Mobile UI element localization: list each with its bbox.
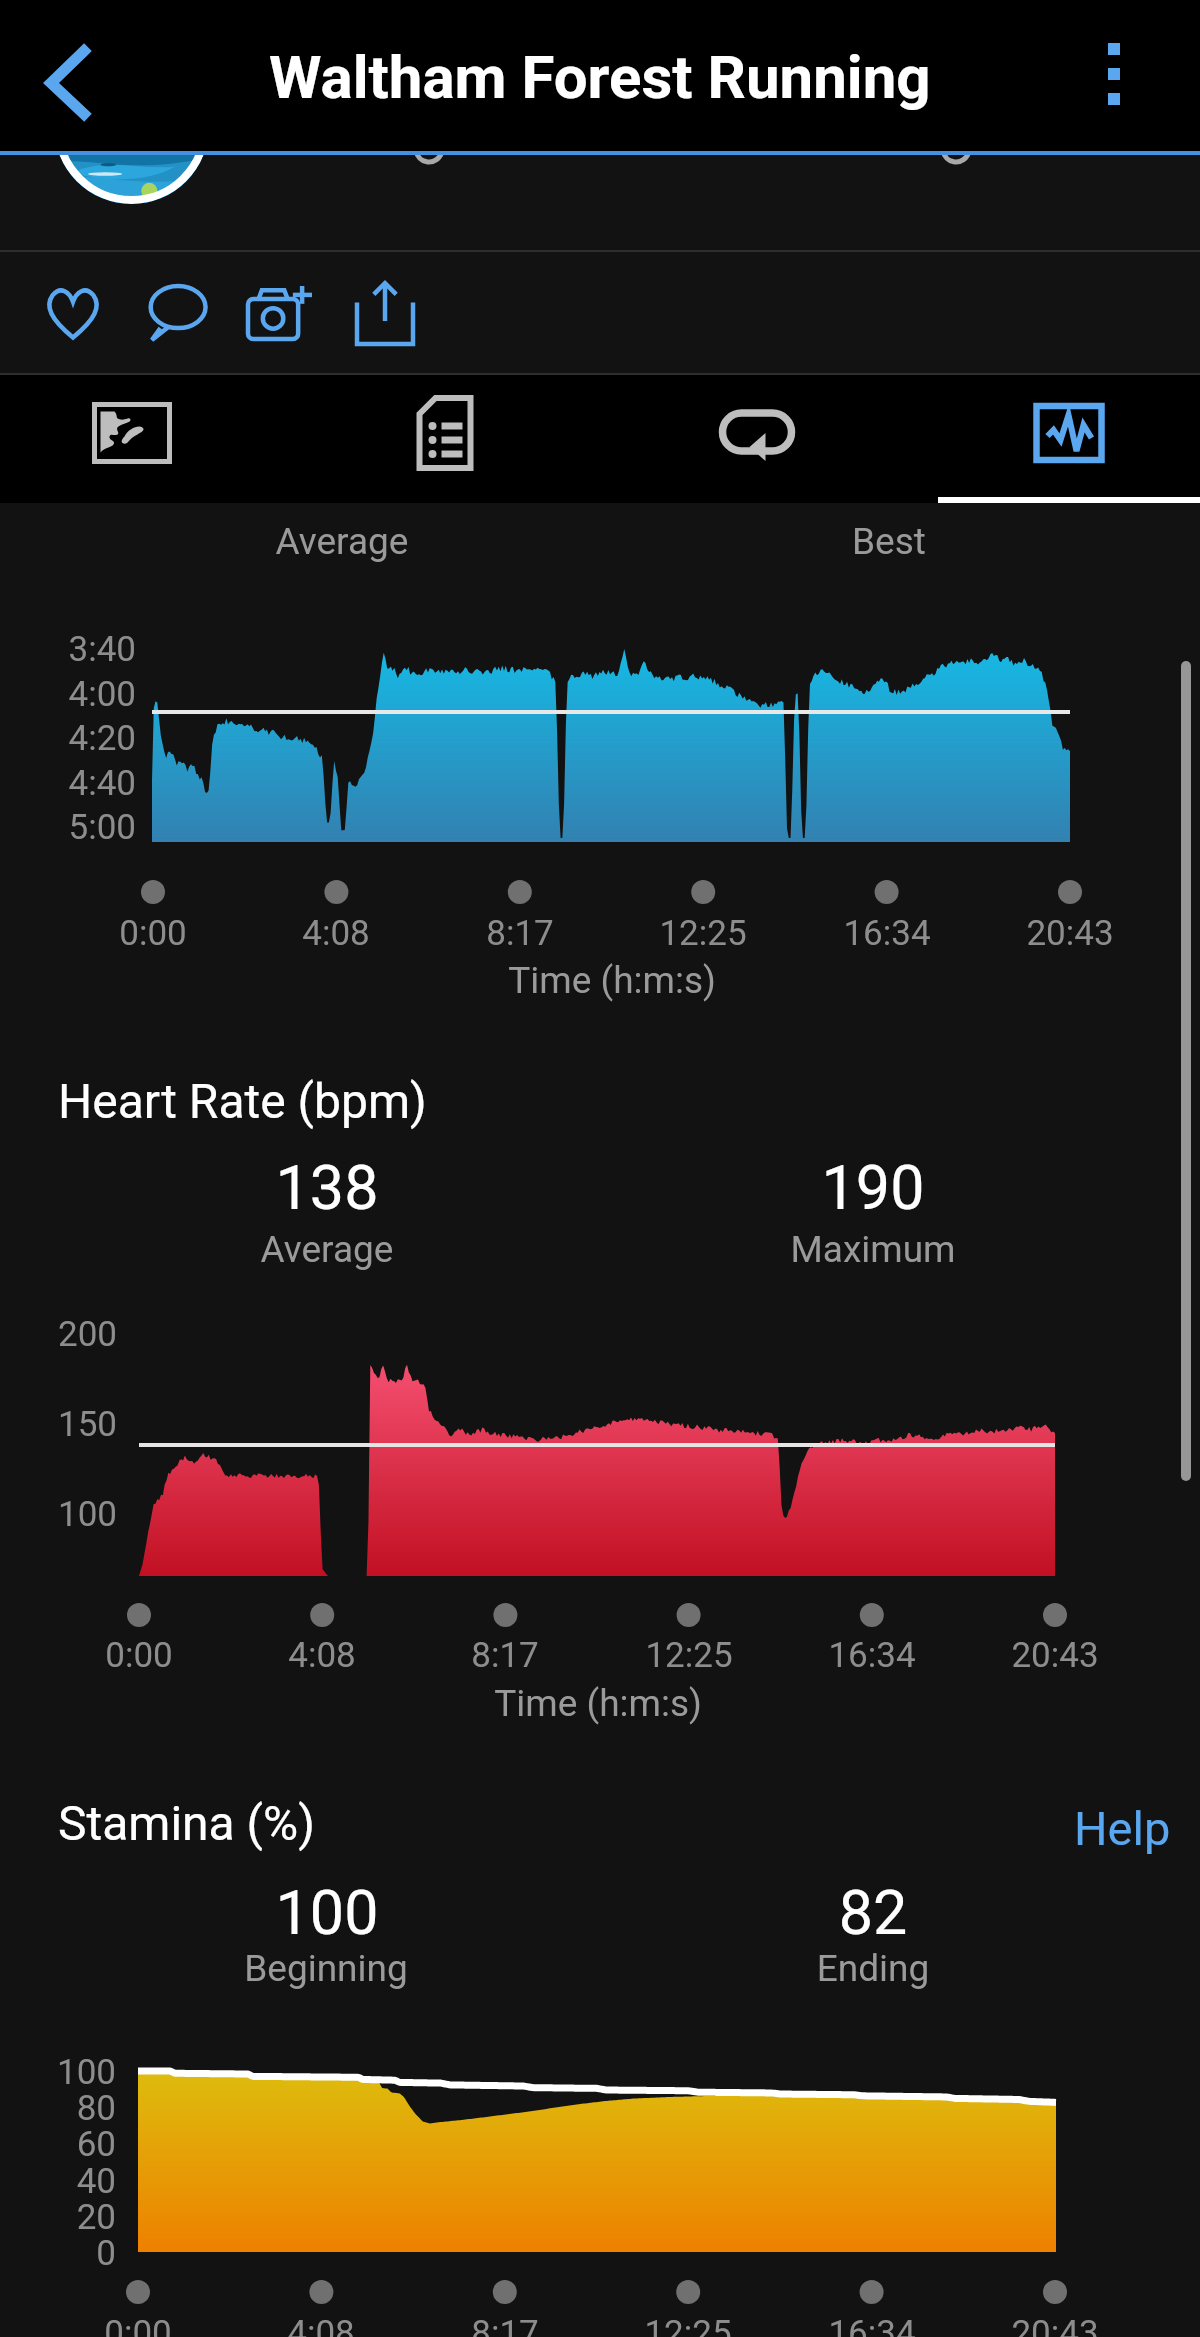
- staticText: 80: [0, 2088, 116, 2129]
- staticText: 8:17: [355, 1635, 655, 1676]
- button[interactable]: Map: [0, 375, 263, 503]
- staticText: 4:08: [186, 913, 486, 954]
- staticText: 4:08: [171, 2313, 471, 2337]
- staticText: 0:00: [0, 1635, 289, 1676]
- button[interactable]: Like: [21, 252, 125, 373]
- staticText: 4:00: [0, 674, 136, 715]
- staticText: Maximum: [573, 1228, 1173, 1271]
- button[interactable]: Charts: [937, 375, 1200, 503]
- staticText: 16:34: [722, 1635, 1022, 1676]
- staticText: Waltham Forest Running: [269, 42, 931, 112]
- button[interactable]: Help: [1062, 1783, 1182, 1873]
- staticText: 8:17: [355, 2313, 655, 2337]
- button[interactable]: Share: [333, 252, 437, 373]
- staticText: 60: [0, 2124, 116, 2165]
- button[interactable]: Details: [313, 375, 576, 503]
- staticText: 200: [0, 1314, 117, 1355]
- staticText: 100: [0, 1494, 117, 1535]
- staticText: 40: [0, 2161, 116, 2202]
- staticText: Time (h:m:s): [298, 1682, 898, 1725]
- staticText: 190: [573, 1152, 1173, 1223]
- staticText: 138: [27, 1152, 627, 1223]
- staticText: 3:40: [0, 629, 136, 670]
- staticText: 0:00: [3, 913, 303, 954]
- staticText: 5:00: [0, 807, 136, 848]
- staticText: 100: [27, 1877, 627, 1948]
- staticText: Best: [589, 520, 1189, 563]
- staticText: 20:43: [905, 2313, 1200, 2337]
- button[interactable]: Laps: [625, 375, 888, 503]
- staticText: Ending: [573, 1947, 1173, 1990]
- staticText: Beginning: [26, 1947, 626, 1990]
- staticText: 8:17: [370, 913, 670, 954]
- staticText: 12:25: [538, 2313, 838, 2337]
- staticText: 16:34: [737, 913, 1037, 954]
- button[interactable]: Back: [20, 27, 116, 123]
- staticText: 20: [0, 2197, 116, 2238]
- staticText: Stamina (%): [58, 1795, 315, 1851]
- staticText: 0: [0, 2233, 116, 2274]
- staticText: 12:25: [539, 1635, 839, 1676]
- staticText: 4:20: [0, 718, 136, 759]
- staticText: 20:43: [920, 913, 1200, 954]
- staticText: 20:43: [905, 1635, 1200, 1676]
- staticText: Heart Rate (bpm): [58, 1073, 427, 1129]
- staticText: 16:34: [722, 2313, 1022, 2337]
- staticText: 82: [573, 1877, 1173, 1948]
- staticText: 12:25: [553, 913, 853, 954]
- staticText: 4:40: [0, 763, 136, 804]
- staticText: 150: [0, 1404, 117, 1445]
- staticText: Average: [27, 1228, 627, 1271]
- staticText: 100: [0, 2052, 116, 2093]
- staticText: Help: [1074, 1801, 1171, 1856]
- staticText: Average: [42, 520, 642, 563]
- staticText: 4:08: [172, 1635, 472, 1676]
- button[interactable]: Add photo: [229, 252, 333, 373]
- staticText: 0:00: [0, 2313, 288, 2337]
- button[interactable]: Comment: [125, 252, 229, 373]
- button[interactable]: More options: [1078, 38, 1150, 110]
- staticText: Time (h:m:s): [312, 959, 912, 1002]
